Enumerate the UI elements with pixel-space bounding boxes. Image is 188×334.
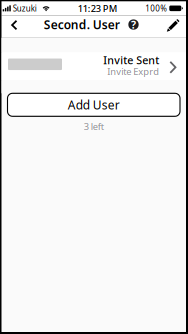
staticText: Add User bbox=[68, 97, 120, 113]
button[interactable]: Help bbox=[128, 19, 139, 30]
staticText: Second. User bbox=[44, 17, 120, 32]
staticText: 3 left bbox=[84, 120, 104, 133]
staticText: Invite Exprd bbox=[107, 65, 159, 78]
staticText: Invite Sent bbox=[103, 53, 159, 67]
button[interactable]: Compose bbox=[165, 14, 181, 39]
staticText: 11:23 PM bbox=[78, 2, 118, 14]
button[interactable]: Invite Sent bbox=[1, 52, 186, 80]
staticText: Suzuki bbox=[13, 3, 37, 14]
button[interactable]: Back bbox=[6, 14, 22, 39]
staticText: ? bbox=[131, 17, 136, 32]
button[interactable]: Add User bbox=[7, 93, 180, 116]
staticText: 100% bbox=[145, 3, 167, 14]
